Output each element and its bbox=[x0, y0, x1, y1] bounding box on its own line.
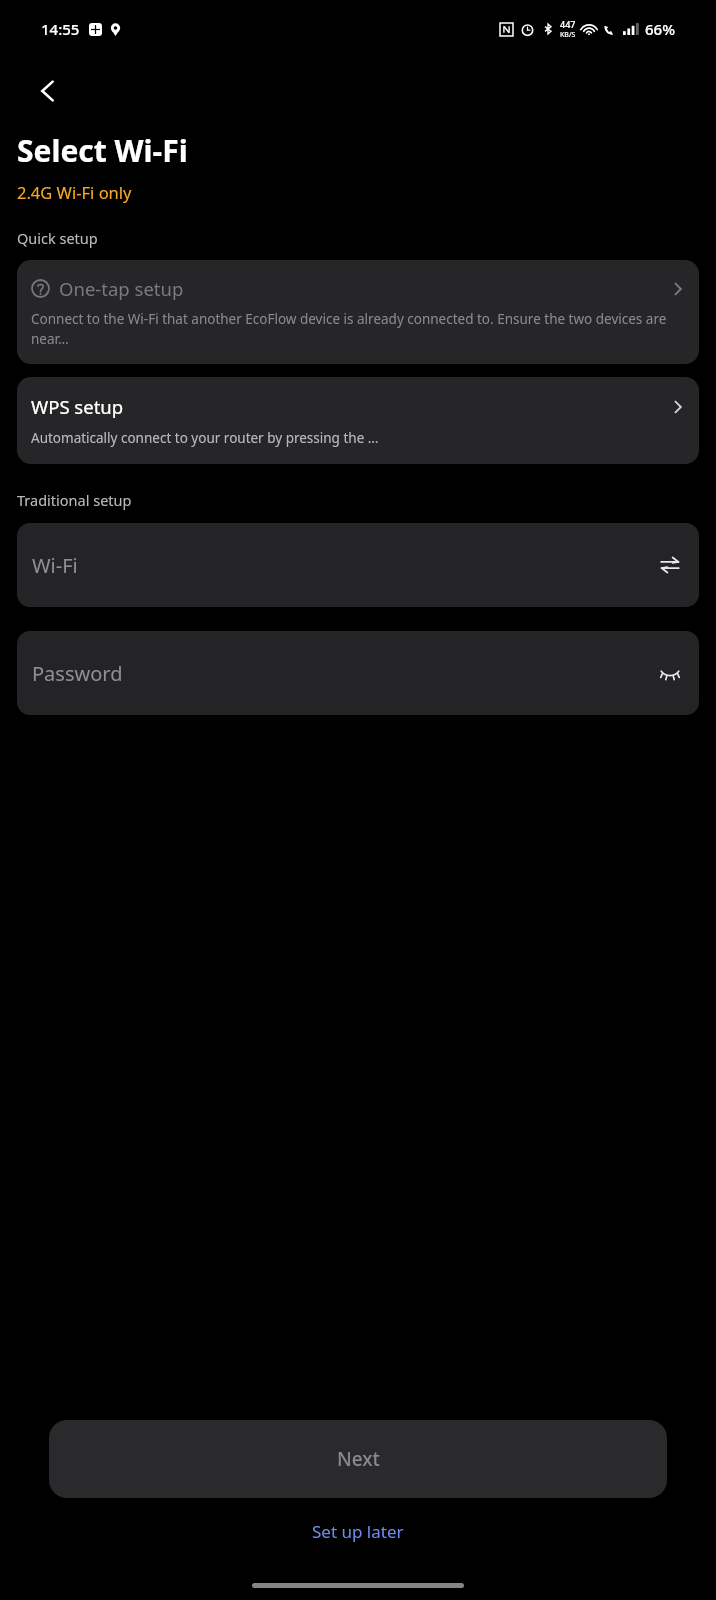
button[interactable]: Next bbox=[49, 1420, 667, 1498]
staticText: Traditional setup bbox=[17, 490, 132, 510]
staticText: 2.4G Wi-Fi only bbox=[17, 181, 132, 203]
staticText: 14:55 bbox=[41, 19, 80, 39]
staticText: One-tap setup bbox=[59, 276, 669, 301]
button[interactable]: Password bbox=[17, 631, 699, 715]
staticText: Quick setup bbox=[17, 228, 98, 248]
button[interactable]: Set up later bbox=[296, 1512, 420, 1551]
staticText: Connect to the Wi-Fi that another EcoFlo… bbox=[31, 310, 687, 348]
staticText: 447 bbox=[560, 18, 576, 30]
staticText: Next bbox=[337, 1446, 380, 1472]
staticText: WPS setup bbox=[31, 394, 669, 419]
staticText: Automatically connect to your router by … bbox=[31, 429, 379, 447]
staticText: Wi-Fi bbox=[32, 552, 659, 579]
staticText: 66% bbox=[645, 19, 675, 39]
staticText: KB/S bbox=[560, 30, 576, 40]
button[interactable]: Wi-Fi bbox=[17, 523, 699, 607]
button[interactable]: WPS setup bbox=[17, 377, 699, 464]
other: Choose Wi-Fi network bbox=[659, 554, 681, 576]
button[interactable]: Back bbox=[21, 64, 75, 118]
staticText: Password bbox=[32, 660, 659, 687]
staticText: Select Wi-Fi bbox=[17, 130, 188, 171]
button[interactable]: One-tap setup bbox=[17, 260, 699, 364]
other: Show password bbox=[659, 662, 681, 684]
staticText: Set up later bbox=[312, 1520, 404, 1543]
